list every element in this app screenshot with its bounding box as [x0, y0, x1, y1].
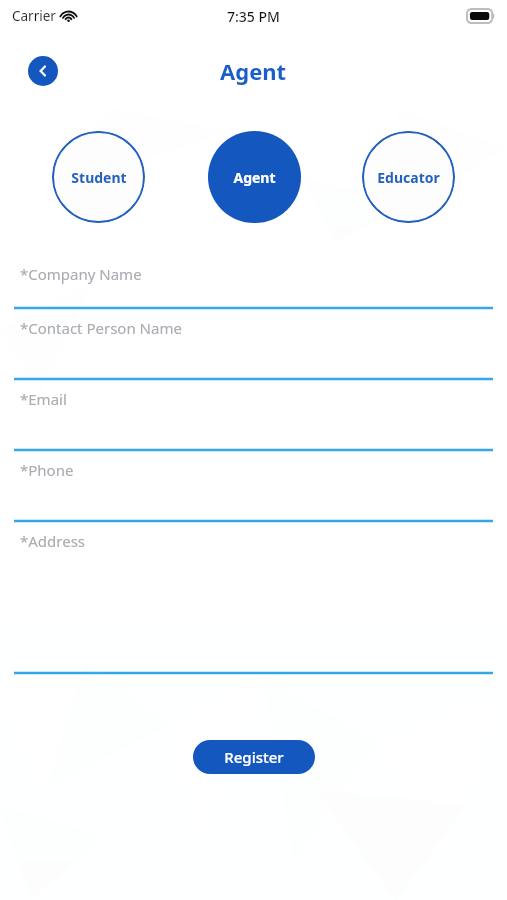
button[interactable]: *Contact Person Name — [0, 310, 507, 381]
button[interactable]: Agent — [208, 131, 301, 223]
button[interactable]: Back — [28, 56, 58, 86]
staticText: Student — [71, 168, 127, 187]
staticText: Agent — [220, 56, 287, 86]
staticText: Educator — [377, 168, 440, 187]
button[interactable]: Register — [193, 740, 315, 774]
staticText: Carrier — [12, 7, 56, 25]
staticText: *Email — [20, 389, 67, 409]
staticText: 7:35 PM — [227, 7, 280, 26]
staticText: *Address — [20, 531, 86, 551]
button[interactable]: *Email — [0, 381, 507, 452]
staticText: Agent — [233, 168, 276, 187]
button[interactable]: Educator — [362, 131, 455, 223]
staticText: *Contact Person Name — [20, 318, 182, 338]
button[interactable]: *Phone — [0, 452, 507, 523]
button[interactable]: *Company Name — [0, 256, 507, 310]
staticText: *Phone — [20, 460, 74, 480]
staticText: Register — [224, 747, 284, 767]
staticText: *Company Name — [20, 264, 142, 284]
button[interactable]: Student — [52, 131, 145, 223]
button[interactable]: *Address — [0, 523, 507, 675]
